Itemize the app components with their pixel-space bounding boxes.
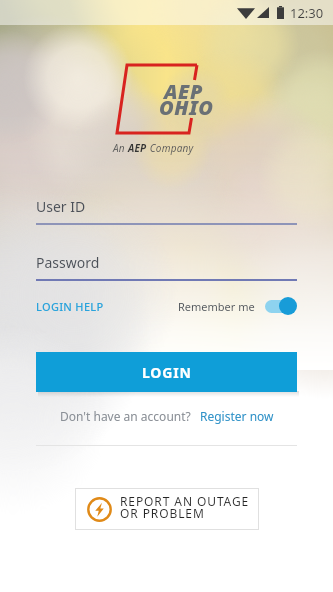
staticText: Company: [147, 141, 194, 155]
staticText: AEP: [128, 141, 147, 155]
staticText: An: [113, 141, 128, 155]
staticText: Password: [36, 253, 100, 272]
button[interactable]: Remember me toggle: [263, 296, 297, 316]
button[interactable]: User ID: [36, 197, 297, 225]
button[interactable]: Register now: [200, 408, 274, 424]
staticText: Register now: [200, 408, 274, 424]
staticText: Remember me: [178, 299, 255, 314]
button[interactable]: REPORT AN OUTAGE: [75, 488, 259, 530]
staticText: OHIO: [159, 94, 214, 121]
button[interactable]: LOGIN HELP: [36, 299, 104, 314]
staticText: REPORT AN OUTAGE: [120, 493, 250, 509]
staticText: LOGIN: [142, 363, 192, 382]
staticText: Don't have an account?: [60, 408, 191, 424]
button[interactable]: LOGIN: [36, 352, 297, 392]
button[interactable]: Password: [36, 253, 297, 281]
staticText: 12:30: [290, 4, 324, 22]
staticText: User ID: [36, 197, 86, 216]
staticText: AEP: [164, 78, 204, 105]
staticText: OR PROBLEM: [120, 505, 205, 521]
staticText: LOGIN HELP: [36, 299, 104, 314]
